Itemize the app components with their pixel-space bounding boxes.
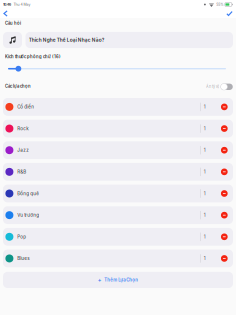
staticText: 1 [204,212,206,218]
staticText: Đồng quê [17,191,39,196]
button[interactable]: Xong [221,9,236,18]
button[interactable]: Jazz [3,141,233,159]
button[interactable]: Quay lại [0,9,15,18]
button[interactable]: + [3,272,233,288]
button[interactable]: Vũ trường [3,206,233,224]
staticText: 1 [204,147,206,153]
staticText: 1 [204,256,206,261]
staticText: Các lựa chọn [5,84,31,89]
staticText: 1 [204,104,206,110]
staticText: R&B [17,169,26,175]
button[interactable]: Blues [3,249,233,267]
staticText: Vũ trường [17,212,39,218]
staticText: Jazz [17,147,29,153]
staticText: 1 [204,169,206,175]
staticText: Pop [17,234,26,240]
button[interactable]: Ẩn tỷ lệ [221,83,233,90]
staticText: Thêm Lựa Chọn [104,277,138,282]
staticText: 1 [204,126,206,131]
button[interactable]: R&B [3,163,233,181]
staticText: Kích thước phông chữ (16) [5,54,61,59]
staticText: Ẩn tỷ lệ [206,84,219,89]
staticText: Câu hỏi [5,21,21,26]
button[interactable]: Cổ điển [3,98,233,116]
staticText: Thích Nghe Thể Loại Nhạc Nào? [29,37,105,43]
button[interactable]: Đồng quê [3,185,233,202]
staticText: Thu 4 May [14,2,31,7]
staticText: 10:46 [3,2,11,7]
staticText: 1 [204,234,206,240]
staticText: Cổ điển [17,104,34,110]
staticText: Blues [17,256,29,261]
staticText: Rock [17,126,28,131]
staticText: + [98,276,102,283]
button[interactable]: Pop [3,228,233,246]
staticText: 55% [216,2,223,7]
button[interactable]: Rock [3,120,233,137]
staticText: 1 [204,191,206,196]
